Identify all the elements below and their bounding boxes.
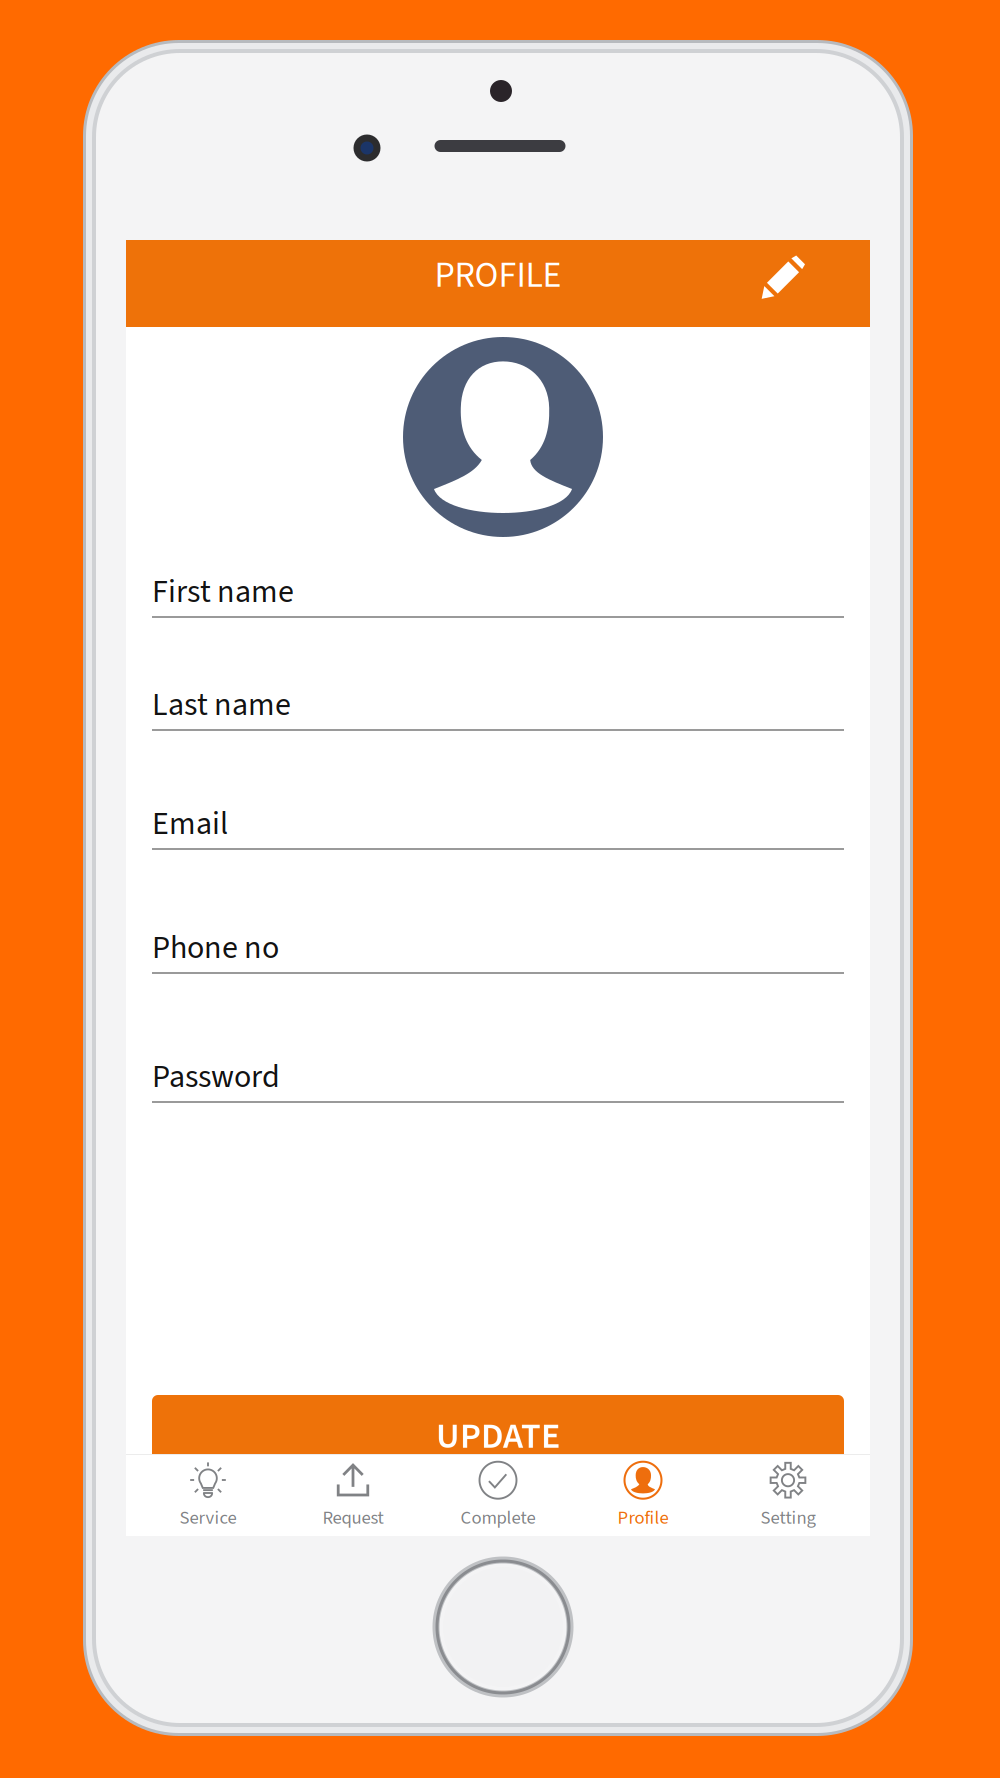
button[interactable]: UPDATE xyxy=(152,1395,844,1478)
staticText: First name xyxy=(152,569,294,615)
staticText: Profile xyxy=(617,1505,668,1531)
button[interactable]: Profile xyxy=(570,1454,715,1536)
button[interactable]: Setting xyxy=(715,1454,860,1536)
button[interactable]: Edit profile xyxy=(744,244,822,322)
button[interactable]: Request xyxy=(280,1454,425,1536)
staticText: UPDATE xyxy=(436,1411,560,1462)
staticText: Password xyxy=(152,1054,280,1100)
staticText: PROFILE xyxy=(434,250,561,301)
staticText: Email xyxy=(152,801,228,847)
staticText: Request xyxy=(322,1505,383,1531)
staticText: Service xyxy=(179,1505,236,1531)
button[interactable]: Complete xyxy=(425,1454,570,1536)
staticText: Setting xyxy=(760,1505,815,1531)
button[interactable]: Service xyxy=(135,1454,280,1536)
staticText: Phone no xyxy=(152,925,279,971)
staticText: Last name xyxy=(152,682,291,728)
staticText: Complete xyxy=(460,1505,535,1531)
